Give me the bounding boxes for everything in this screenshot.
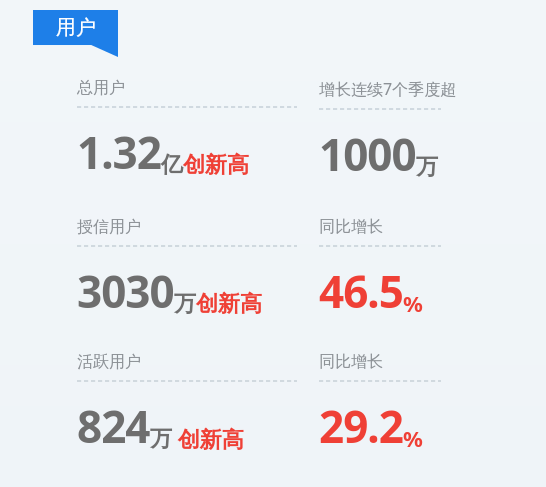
staticText: 创新高 [183,151,249,179]
button[interactable]: 同比增长 [319,217,519,318]
staticText: 1.32 [77,122,161,182]
staticText: 3030 [77,261,174,321]
button[interactable]: 用户 [33,10,118,57]
staticText: % [403,288,423,318]
staticText: 总用户 [77,78,125,98]
staticText: 增长连续7个季度超 [319,78,457,100]
staticText: 用户 [56,15,96,40]
staticText: % [403,423,423,453]
staticText: 亿 [161,151,183,179]
staticText: 29.2 [319,396,403,456]
staticText: 万 [416,153,438,181]
staticText: 授信用户 [77,217,141,237]
staticText: 1000 [319,124,416,184]
button[interactable]: 增长连续7个季度超 [319,78,519,181]
staticText: 万 [150,425,172,453]
button[interactable]: 授信用户 [77,217,319,318]
staticText: 824 [77,396,150,456]
staticText: 创新高 [172,423,244,453]
button[interactable]: 总用户 [77,78,319,179]
staticText: 同比增长 [319,352,383,372]
staticText: 万 [174,290,196,318]
staticText: 活跃用户 [77,352,141,372]
staticText: 46.5 [319,261,403,321]
staticText: 创新高 [196,290,262,318]
button[interactable]: 同比增长 [319,352,519,453]
staticText: 同比增长 [319,217,383,237]
button[interactable]: 活跃用户 [77,352,319,453]
